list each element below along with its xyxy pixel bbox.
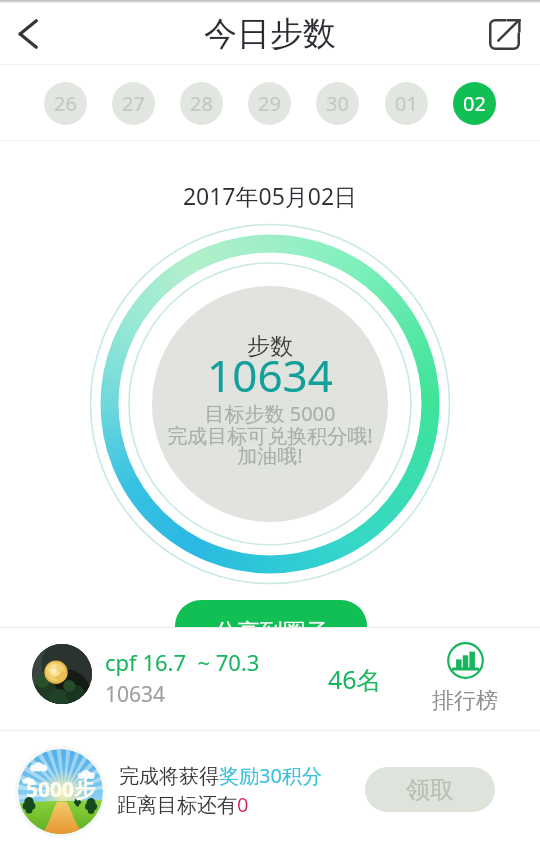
button[interactable]: Share <box>468 3 540 65</box>
button[interactable]: 27 <box>112 82 155 125</box>
staticText: 步数 <box>0 332 540 361</box>
button[interactable]: 01 <box>385 82 428 125</box>
staticText: 02 <box>463 90 486 117</box>
button[interactable]: 26 <box>44 82 87 125</box>
button[interactable]: 分享到圈子 <box>175 600 367 664</box>
staticText: 28 <box>190 90 213 117</box>
button[interactable]: 28 <box>180 82 223 125</box>
staticText: 排行榜 <box>432 687 498 715</box>
button[interactable]: 排行榜 <box>417 642 513 715</box>
staticText: 2017年05月02日 <box>0 180 540 211</box>
staticText: 分享到圈子 <box>214 618 329 647</box>
button[interactable]: 29 <box>248 82 291 125</box>
button[interactable]: cpf 16.7 ~ 70.3 <box>0 628 540 726</box>
button[interactable]: Back <box>0 3 60 65</box>
staticText: 完成目标可兑换积分哦! 加油哦! <box>0 422 540 469</box>
staticText: 01 <box>395 90 418 117</box>
staticText: 10634 <box>105 680 166 709</box>
button[interactable]: 30 <box>316 82 359 125</box>
staticText: 10634 <box>0 345 540 405</box>
button[interactable]: 领取 <box>365 767 495 812</box>
staticText: 27 <box>122 90 145 117</box>
staticText: cpf 16.7 ~ 70.3 <box>105 647 260 677</box>
staticText: 26 <box>54 90 77 117</box>
staticText: 目标步数 5000 <box>0 400 540 427</box>
staticText: 46名 <box>328 662 382 696</box>
staticText: 领取 <box>406 775 454 805</box>
staticText: 29 <box>258 90 281 117</box>
staticText: 距离目标还有0 <box>117 791 249 818</box>
button[interactable]: 02 <box>453 82 496 125</box>
staticText: 今日步数 <box>204 13 336 55</box>
staticText: 完成将获得奖励30积分 <box>119 762 322 789</box>
staticText: 5000步 <box>26 775 96 804</box>
staticText: 30 <box>326 90 349 117</box>
